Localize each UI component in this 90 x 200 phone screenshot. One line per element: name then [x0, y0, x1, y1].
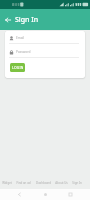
button[interactable]: Widget — [1, 179, 13, 187]
button[interactable]: Find an ad — [15, 179, 32, 187]
staticText: Dashboard — [36, 181, 51, 185]
staticText: LOGIN — [12, 65, 24, 70]
button[interactable]: About Us — [54, 179, 69, 187]
button[interactable]: Back — [14, 189, 25, 200]
staticText: Sign In — [72, 181, 82, 185]
staticText: Find an ad — [16, 181, 31, 185]
button[interactable]: Home — [40, 189, 51, 200]
staticText: Email — [16, 36, 25, 40]
button[interactable]: Recents — [65, 189, 76, 200]
staticText: About Us — [55, 181, 68, 185]
staticText: Password — [16, 50, 31, 54]
button[interactable]: Back — [2, 14, 13, 25]
button[interactable]: LOGIN — [10, 63, 25, 72]
button[interactable]: Dashboard — [35, 179, 52, 187]
staticText: Sign In — [15, 15, 39, 25]
staticText: Widget — [2, 181, 12, 185]
button[interactable]: Sign In — [71, 179, 83, 187]
